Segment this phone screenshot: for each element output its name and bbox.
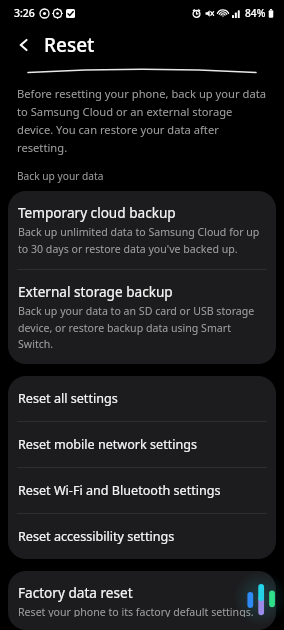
staticText: Back up your data — [17, 169, 104, 183]
staticText: Reset mobile network settings — [18, 436, 198, 453]
button[interactable]: Reset all settings — [8, 376, 276, 421]
staticText: Before resetting your phone, back up you… — [17, 86, 270, 155]
button[interactable]: External storage backup — [8, 270, 276, 364]
staticText: Reset accessibility settings — [18, 528, 175, 545]
staticText: Back up unlimited data to Samsung Cloud … — [18, 225, 265, 256]
staticText: Temporary cloud backup — [18, 203, 176, 222]
staticText: 84% — [245, 6, 266, 20]
button[interactable]: Factory data reset — [8, 571, 276, 630]
button[interactable]: Back — [10, 31, 38, 59]
button[interactable]: Temporary cloud backup — [8, 191, 276, 269]
staticText: External storage backup — [18, 282, 173, 301]
button[interactable]: Reset accessibility settings — [8, 514, 276, 559]
staticText: Reset all settings — [18, 390, 118, 407]
staticText: Back up your data to an SD card or USB s… — [18, 304, 265, 351]
button[interactable]: Reset Wi-Fi and Bluetooth settings — [8, 468, 276, 513]
staticText: 3:26 — [14, 6, 35, 20]
staticText: Reset your phone to its factory default … — [18, 605, 265, 617]
staticText: Factory data reset — [18, 583, 133, 602]
staticText: Reset — [44, 32, 95, 58]
staticText: Reset Wi-Fi and Bluetooth settings — [18, 482, 221, 499]
button[interactable]: Reset mobile network settings — [8, 422, 276, 467]
